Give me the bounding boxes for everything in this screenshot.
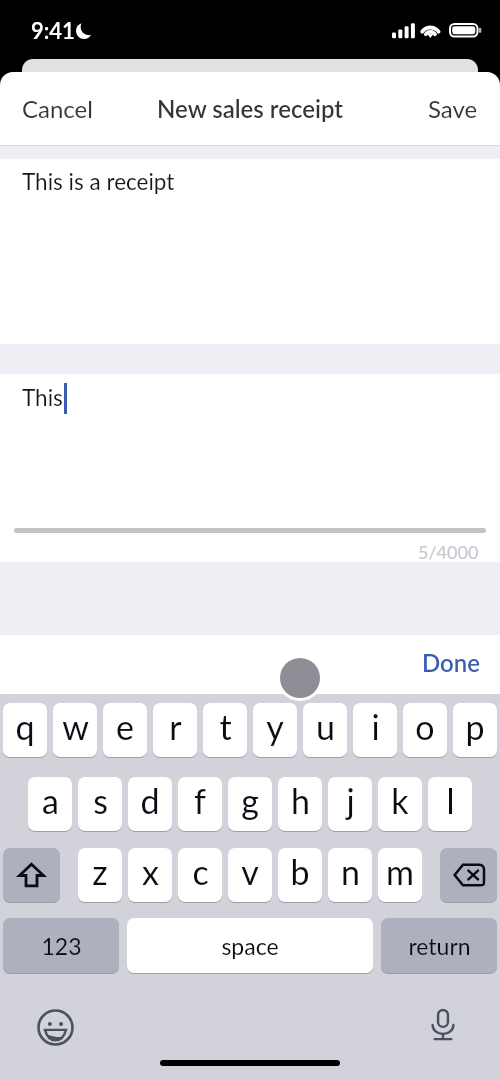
button[interactable]: u [303, 703, 347, 757]
staticText: space [221, 932, 279, 960]
button[interactable]: Emoji keyboard [35, 1007, 75, 1047]
staticText: New sales receipt [157, 94, 344, 123]
button[interactable]: 123 [3, 918, 119, 973]
staticText: l [446, 780, 455, 821]
button[interactable]: Shift [3, 848, 60, 902]
staticText: k [391, 780, 409, 821]
staticText: return [408, 932, 471, 960]
staticText: Done [422, 648, 481, 677]
button[interactable]: z [78, 848, 122, 902]
staticText: n [341, 851, 360, 892]
staticText: x [142, 851, 159, 892]
button[interactable]: space [127, 918, 373, 973]
button[interactable]: q [3, 703, 47, 757]
staticText: b [290, 851, 310, 892]
button[interactable]: o [403, 703, 447, 757]
staticText: t [219, 706, 232, 747]
staticText: i [371, 706, 380, 747]
staticText: 9:41 [31, 17, 75, 43]
staticText: z [92, 851, 108, 892]
staticText: w [62, 706, 89, 747]
staticText: 5/4000 [418, 541, 479, 563]
staticText: u [316, 706, 335, 747]
staticText: Save [428, 94, 478, 123]
staticText: g [241, 780, 259, 821]
button[interactable]: Resize text field [280, 658, 320, 698]
staticText: This is a receipt [22, 168, 175, 195]
button[interactable]: Delete [440, 848, 497, 902]
button[interactable]: i [353, 703, 397, 757]
button[interactable]: j [328, 777, 372, 831]
button[interactable]: s [78, 777, 122, 831]
button[interactable]: Dictate [423, 1005, 463, 1045]
button[interactable]: d [128, 777, 172, 831]
staticText: y [266, 706, 284, 747]
button[interactable]: b [278, 848, 322, 902]
button[interactable]: l [428, 777, 472, 831]
button[interactable]: p [453, 703, 497, 757]
staticText: d [140, 780, 160, 821]
button[interactable]: x [128, 848, 172, 902]
staticText: m [386, 851, 414, 892]
button[interactable]: f [178, 777, 222, 831]
button[interactable]: g [228, 777, 272, 831]
button[interactable]: w [53, 703, 97, 757]
button[interactable]: return [381, 918, 497, 973]
button[interactable]: k [378, 777, 422, 831]
button[interactable]: Done [400, 638, 500, 691]
staticText: j [346, 780, 355, 821]
button[interactable]: t [203, 703, 247, 757]
staticText: Cancel [22, 94, 93, 123]
button[interactable]: y [253, 703, 297, 757]
button[interactable]: m [378, 848, 422, 902]
button[interactable]: This is a receipt [0, 159, 500, 344]
staticText: v [241, 851, 259, 892]
button[interactable]: r [153, 703, 197, 757]
button[interactable]: e [103, 703, 147, 757]
staticText: q [15, 706, 35, 747]
button[interactable]: v [228, 848, 272, 902]
staticText: a [42, 780, 59, 821]
button[interactable]: h [278, 777, 322, 831]
staticText: c [192, 851, 209, 892]
staticText: o [415, 706, 435, 747]
button[interactable]: n [328, 848, 372, 902]
staticText: p [465, 706, 485, 747]
staticText: s [93, 780, 108, 821]
button[interactable]: Save [406, 78, 500, 139]
button[interactable]: Cancel [0, 78, 115, 139]
staticText: e [116, 706, 134, 747]
staticText: h [291, 780, 310, 821]
button[interactable]: This [0, 374, 500, 562]
staticText: f [194, 780, 206, 821]
staticText: r [169, 706, 182, 747]
button[interactable]: a [28, 777, 72, 831]
staticText: This [22, 384, 63, 411]
button[interactable]: c [178, 848, 222, 902]
staticText: 123 [41, 932, 82, 960]
